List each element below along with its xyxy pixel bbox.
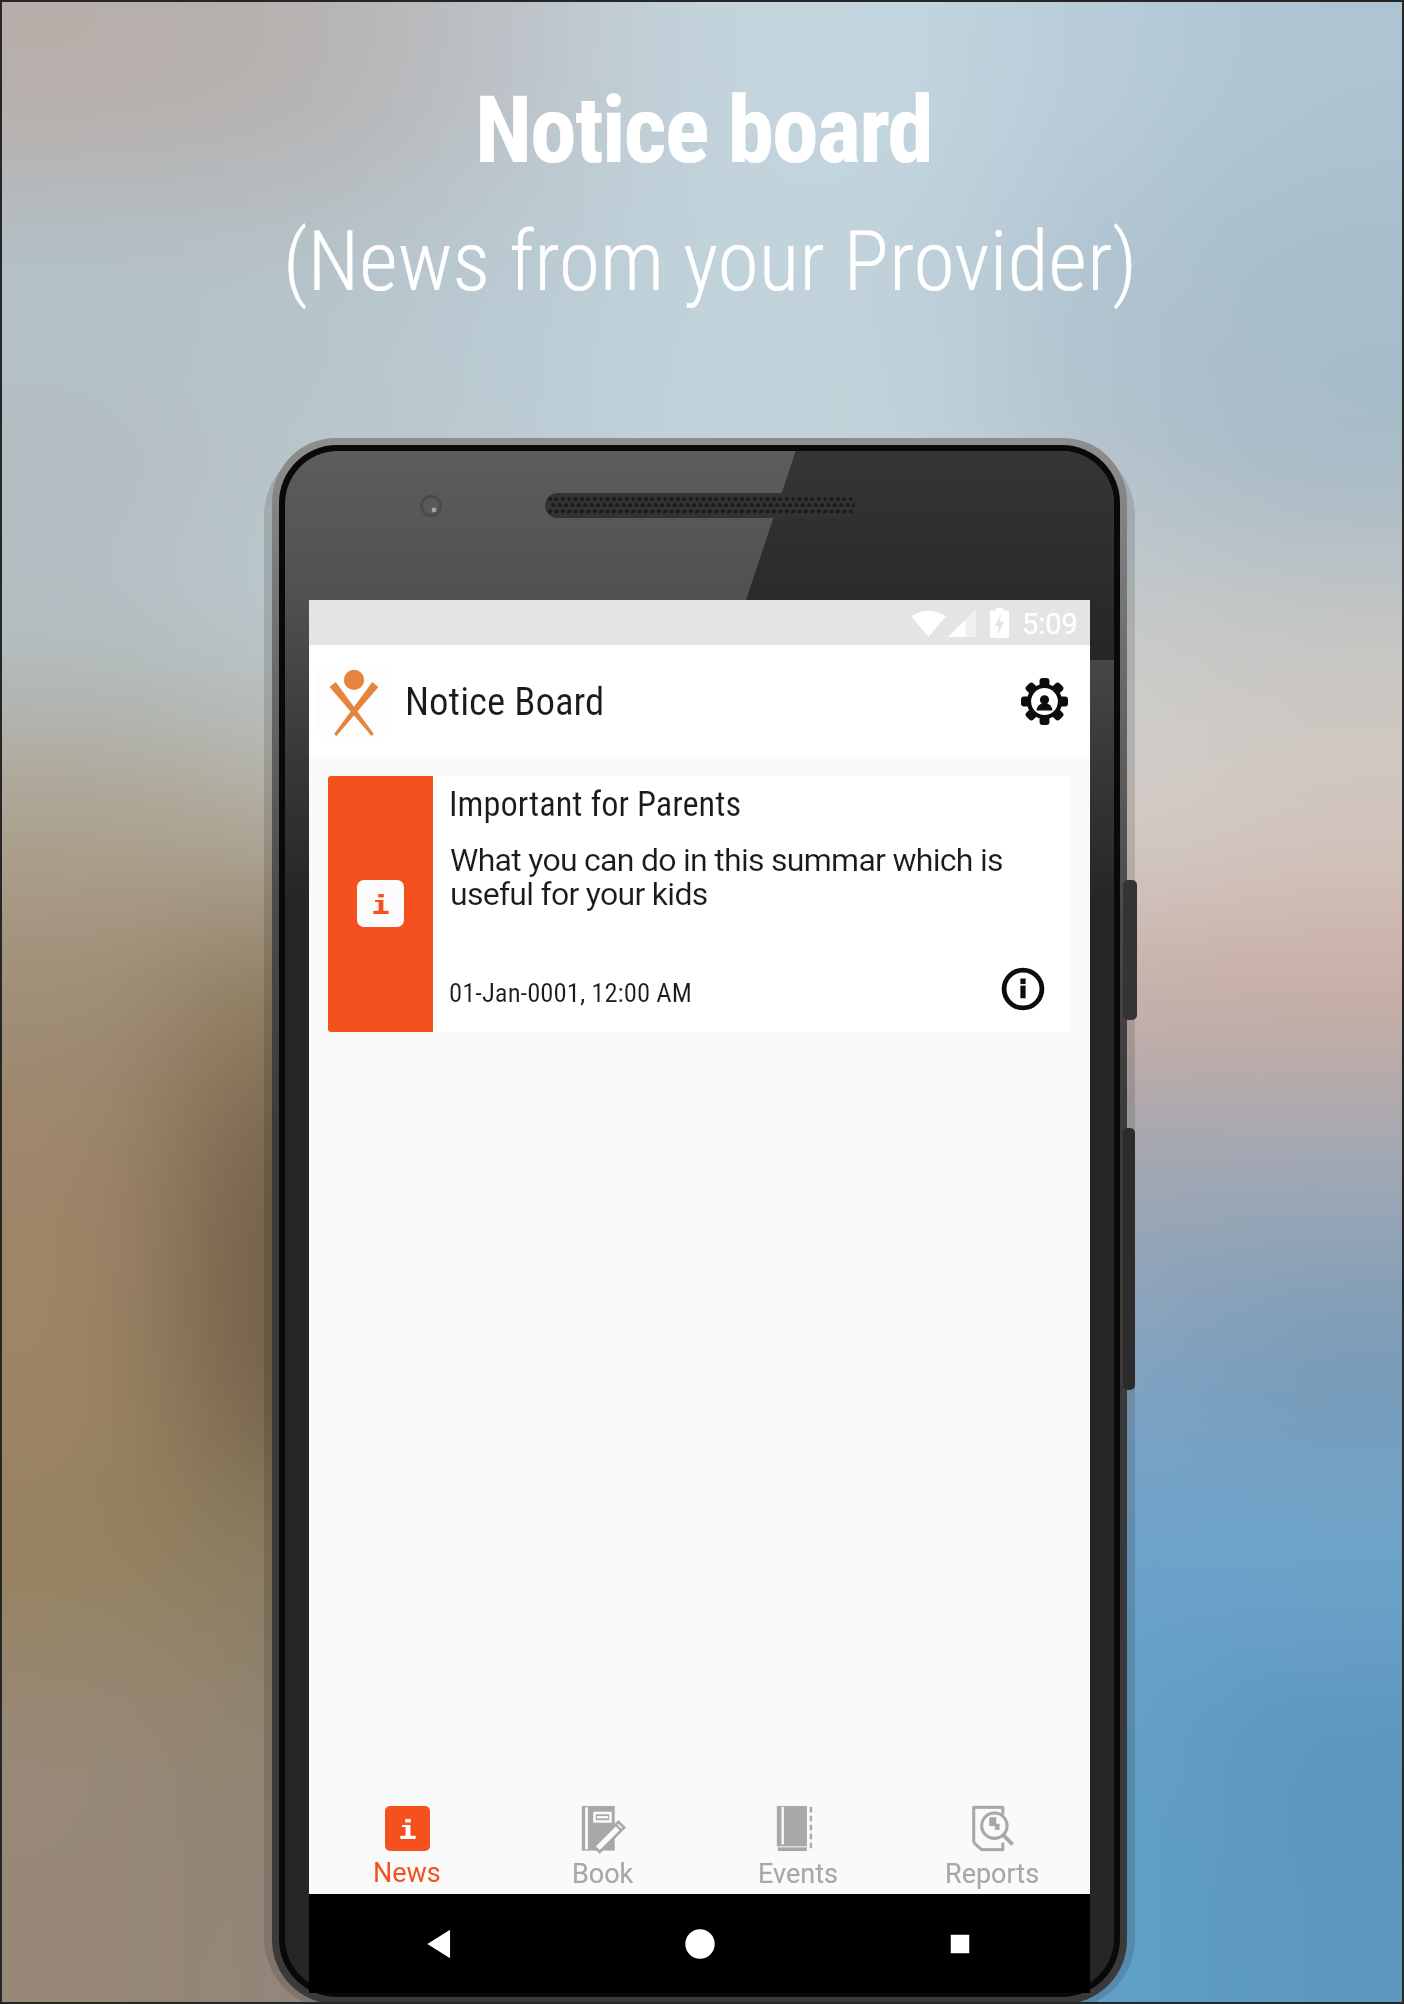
staticText: 01-Jan-0001, 12:00 AM: [449, 977, 692, 1008]
button[interactable]: Book: [505, 1795, 700, 1899]
button[interactable]: App logo: [317, 665, 390, 738]
staticText: (News from your Provider): [283, 212, 1138, 310]
staticText: News: [373, 1857, 441, 1889]
button[interactable]: Back: [309, 1894, 570, 1993]
button[interactable]: Recents: [830, 1894, 1090, 1993]
button[interactable]: Settings: [1004, 661, 1084, 741]
button[interactable]: Important for Parents: [328, 776, 1071, 1032]
staticText: Notice Board: [405, 679, 605, 725]
staticText: Book: [572, 1858, 634, 1890]
button[interactable]: News: [309, 1795, 505, 1899]
button[interactable]: Events: [700, 1795, 895, 1899]
staticText: 5:09: [1022, 607, 1078, 641]
staticText: What you can do in this summar which is …: [450, 841, 1003, 913]
button[interactable]: Reports: [895, 1795, 1090, 1899]
staticText: Reports: [945, 1858, 1040, 1890]
button[interactable]: Home: [570, 1894, 830, 1993]
staticText: Events: [758, 1858, 838, 1890]
staticText: Important for Parents: [449, 784, 742, 824]
staticText: Notice board: [475, 76, 933, 185]
button[interactable]: Info: [1002, 968, 1044, 1010]
